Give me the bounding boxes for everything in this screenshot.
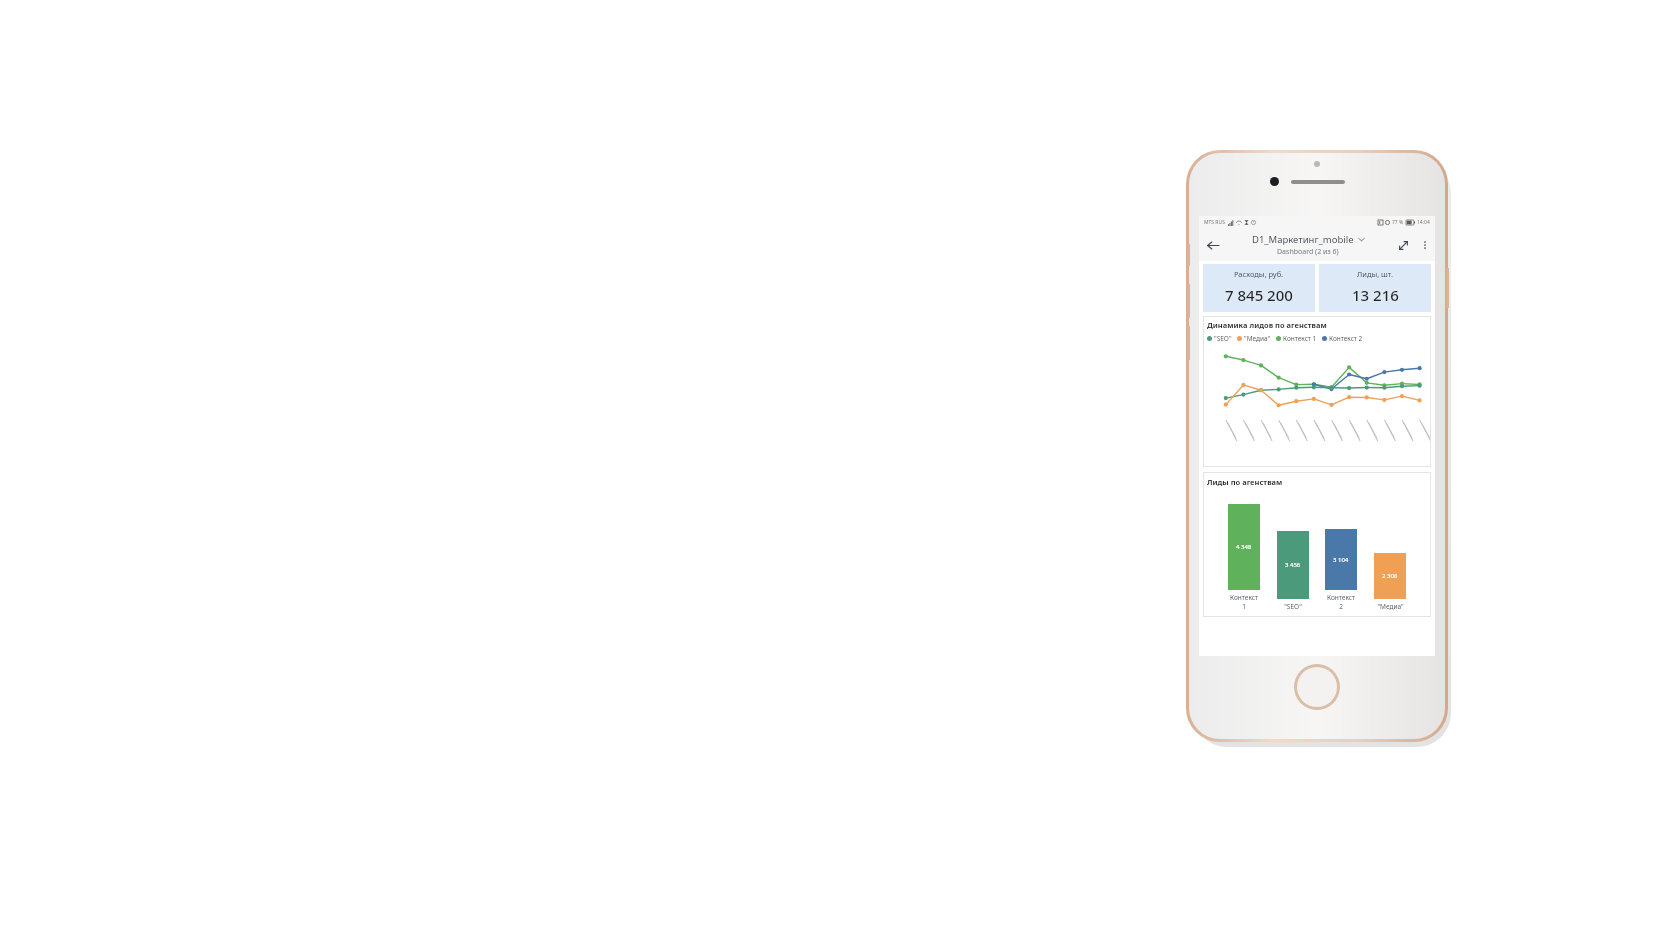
staticText: Контекст 1: [1283, 334, 1317, 343]
button[interactable]: Динамика лидов по агенствам: [1203, 316, 1431, 467]
staticText: "Медиа": [1377, 602, 1404, 611]
staticText: Контекст: [1327, 593, 1355, 602]
staticText: Динамика лидов по агенствам: [1207, 320, 1327, 330]
staticText: Лиды по агенствам: [1207, 477, 1283, 487]
button[interactable]: Расходы, руб.: [1203, 264, 1315, 312]
staticText: D1_Маркетинг_mobile: [1252, 233, 1354, 246]
staticText: Dashboard (2 из 6): [1277, 247, 1339, 257]
staticText: 3 104: [1333, 556, 1349, 564]
button[interactable]: Лиды по агенствам: [1203, 472, 1431, 617]
button[interactable]: Expand: [1391, 233, 1415, 257]
staticText: Расходы, руб.: [1234, 269, 1284, 279]
button[interactable]: Back: [1199, 232, 1225, 258]
button[interactable]: D1_Маркетинг_mobile: [1225, 233, 1391, 257]
staticText: "SEO": [1214, 334, 1232, 343]
staticText: "SEO": [1284, 602, 1302, 611]
staticText: 1: [1242, 602, 1246, 611]
staticText: 14:04: [1417, 219, 1430, 226]
staticText: 77 %: [1392, 219, 1404, 226]
staticText: 2: [1339, 602, 1343, 611]
button[interactable]: More options: [1415, 235, 1435, 255]
staticText: Контекст: [1230, 593, 1258, 602]
staticText: 13 216: [1352, 285, 1399, 305]
staticText: 4 348: [1236, 543, 1252, 551]
staticText: 2 308: [1382, 572, 1398, 580]
staticText: MTS RUS: [1204, 219, 1225, 226]
staticText: "Медиа": [1244, 334, 1271, 343]
staticText: 3 456: [1285, 561, 1301, 569]
staticText: Контекст 2: [1329, 334, 1363, 343]
staticText: Лиды, шт.: [1357, 269, 1393, 279]
staticText: 7 845 200: [1225, 285, 1293, 305]
button[interactable]: Лиды, шт.: [1319, 264, 1431, 312]
